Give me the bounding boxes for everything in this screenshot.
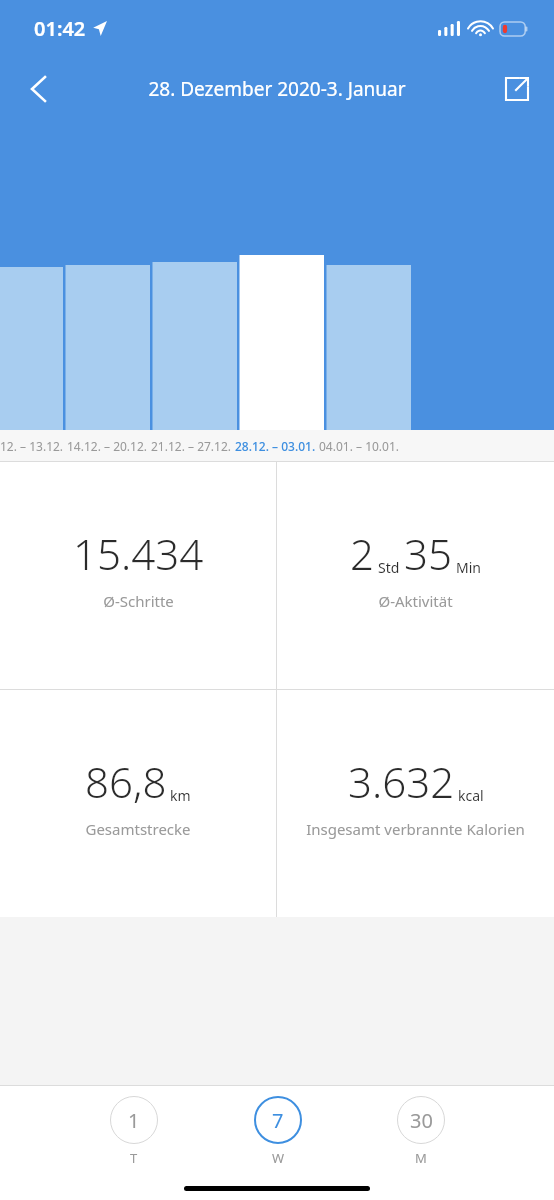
staticText: 21.12. – 27.12. <box>151 438 232 454</box>
staticText: Std <box>378 558 400 577</box>
button[interactable]: 2 <box>277 462 554 689</box>
staticText: Min <box>456 558 481 577</box>
staticText: 15.434 <box>73 525 204 582</box>
staticText: km <box>170 786 191 805</box>
button[interactable]: 15.434 <box>0 462 276 689</box>
staticText: 01:42 <box>34 15 86 42</box>
button[interactable]: 30 <box>393 1096 449 1167</box>
staticText: Ø-Aktivität <box>378 591 453 611</box>
staticText: 7 <box>272 1107 284 1134</box>
staticText: 1 <box>128 1107 140 1134</box>
button[interactable]: 3.632 <box>277 690 554 917</box>
button[interactable]: 7 <box>250 1096 306 1167</box>
staticText: 28. Dezember 2020-3. Januar <box>148 76 406 102</box>
staticText: 2 <box>350 525 374 582</box>
staticText: Insgesamt verbrannte Kalorien <box>306 819 525 839</box>
staticText: 28.12. – 03.01. <box>235 438 316 454</box>
staticText: 30 <box>410 1107 433 1134</box>
staticText: M <box>415 1149 427 1167</box>
button[interactable]: 86,8 <box>0 690 276 917</box>
staticText: T <box>130 1149 138 1167</box>
button[interactable]: Back <box>12 63 64 115</box>
staticText: Gesamtstrecke <box>85 819 191 839</box>
staticText: W <box>272 1149 285 1167</box>
staticText: Ø-Schritte <box>103 591 174 611</box>
staticText: 14.12. – 20.12. <box>67 438 148 454</box>
staticText: 35 <box>404 525 452 582</box>
staticText: 86,8 <box>85 753 167 810</box>
staticText: 12. – 13.12. <box>0 438 64 454</box>
button[interactable]: Share <box>492 64 542 114</box>
button[interactable]: 1 <box>106 1096 162 1167</box>
staticText: kcal <box>458 786 484 805</box>
staticText: 3.632 <box>348 753 455 810</box>
staticText: 04.01. – 10.01. <box>319 438 400 454</box>
